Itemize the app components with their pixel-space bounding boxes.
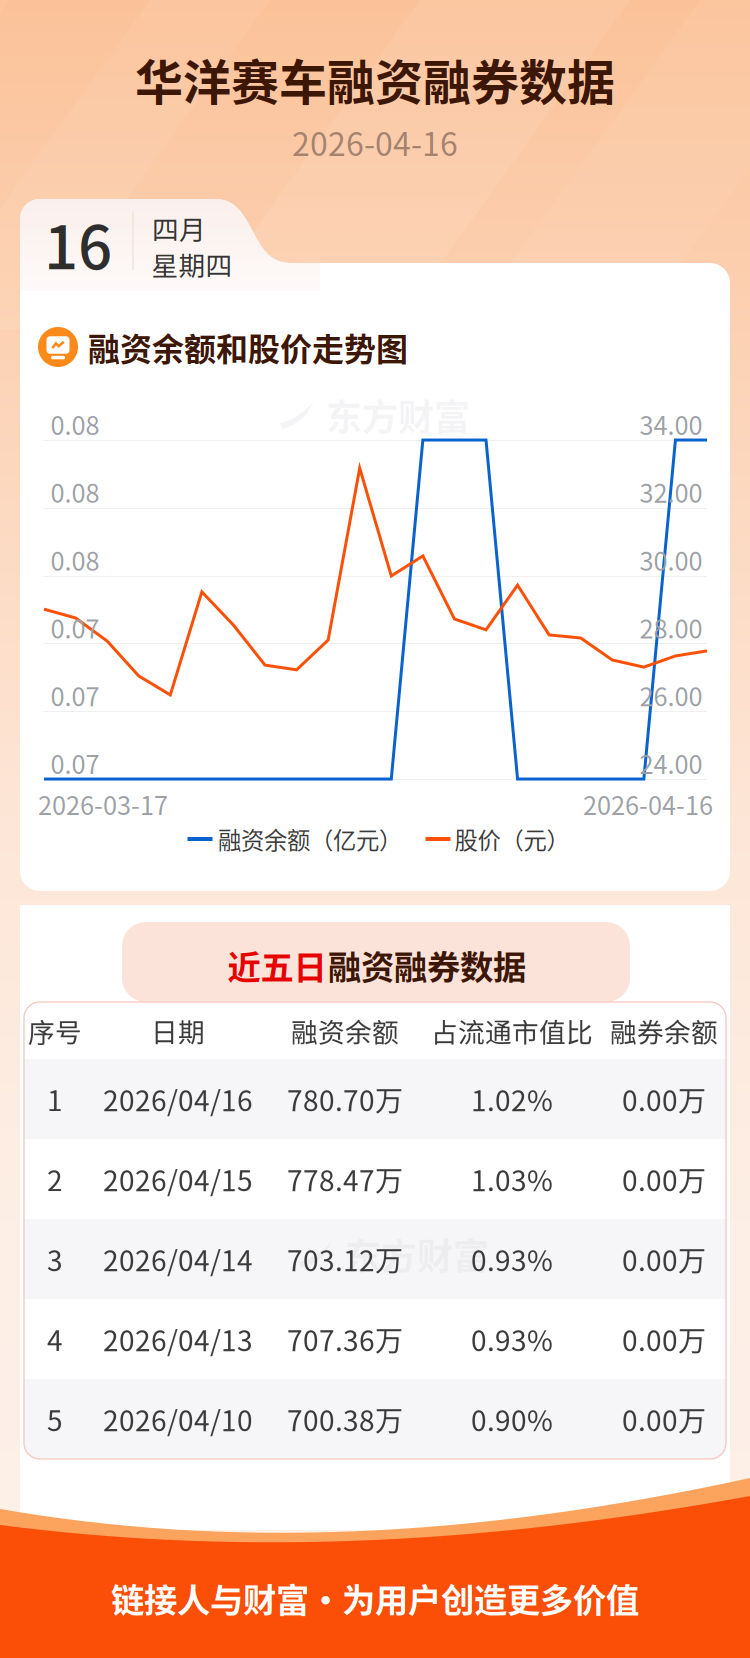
staticText: 1.02% xyxy=(471,1079,553,1119)
staticText: 东方财富 xyxy=(326,389,470,441)
staticText: 0.90% xyxy=(471,1399,553,1439)
staticText: 链接人与财富·为用户创造更多价值 xyxy=(111,1574,639,1622)
staticText: 0.08 xyxy=(50,406,99,442)
staticText: 四月 xyxy=(152,209,206,247)
staticText: 703.12万 xyxy=(287,1239,403,1279)
staticText: 0.07 xyxy=(50,609,99,646)
staticText: 2 xyxy=(47,1159,63,1199)
staticText: 0.00万 xyxy=(622,1159,706,1199)
staticText: 34.00 xyxy=(639,406,702,442)
staticText: 近五日 xyxy=(227,941,326,989)
staticText: 2026/04/13 xyxy=(103,1319,253,1359)
staticText: 5 xyxy=(47,1399,63,1439)
staticText: 0.00万 xyxy=(622,1239,706,1279)
staticText: 融资余额和股价走势图 xyxy=(88,324,408,370)
staticText: 融资余额 xyxy=(291,1011,399,1050)
staticText: 30.00 xyxy=(639,541,702,578)
staticText: 股价（元） xyxy=(454,822,569,856)
staticText: 4 xyxy=(47,1319,63,1359)
staticText: 0.08 xyxy=(50,473,99,510)
staticText: 32.00 xyxy=(639,473,702,510)
staticText: 2026/04/16 xyxy=(103,1079,253,1119)
staticText: 780.70万 xyxy=(287,1079,403,1119)
staticText: 占流通市值比 xyxy=(431,1011,593,1050)
staticText: 778.47万 xyxy=(287,1159,403,1199)
staticText: 0.08 xyxy=(50,541,99,578)
staticText: 融券余额 xyxy=(610,1011,718,1050)
staticText: 融资融券数据 xyxy=(328,941,526,989)
staticText: 东方财富 xyxy=(345,1228,489,1280)
staticText: 2026/04/14 xyxy=(103,1239,253,1279)
staticText: 0.00万 xyxy=(622,1319,706,1359)
staticText: 3 xyxy=(47,1239,63,1279)
staticText: 2026-04-16 xyxy=(583,786,713,822)
staticText: 26.00 xyxy=(639,677,702,714)
staticText: 0.07 xyxy=(50,677,99,714)
staticText: 28.00 xyxy=(639,609,702,646)
staticText: 700.38万 xyxy=(287,1399,403,1439)
staticText: 2026/04/15 xyxy=(103,1159,253,1199)
staticText: 日期 xyxy=(151,1011,205,1050)
staticText: 707.36万 xyxy=(287,1319,403,1359)
staticText: 0.93% xyxy=(471,1239,553,1279)
staticText: 1.03% xyxy=(471,1159,553,1199)
staticText: 0.00万 xyxy=(622,1399,706,1439)
staticText: 2026-04-16 xyxy=(292,119,458,165)
staticText: 1 xyxy=(47,1079,63,1119)
staticText: 0.93% xyxy=(471,1319,553,1359)
staticText: 24.00 xyxy=(639,745,702,781)
staticText: 2026-03-17 xyxy=(38,786,168,822)
staticText: 0.07 xyxy=(50,745,99,781)
staticText: 融资余额（亿元） xyxy=(218,822,402,856)
staticText: 华洋赛车融资融券数据 xyxy=(135,44,615,114)
staticText: 序号 xyxy=(28,1011,82,1050)
staticText: 星期四 xyxy=(151,245,232,283)
staticText: 0.00万 xyxy=(622,1079,706,1119)
staticText: 16 xyxy=(44,200,112,286)
staticText: 2026/04/10 xyxy=(103,1399,253,1439)
